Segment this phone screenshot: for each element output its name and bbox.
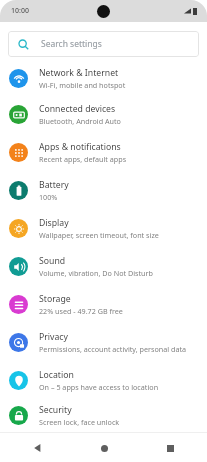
staticText: On – 5 apps have access to location — [39, 382, 159, 392]
button[interactable]: Recent apps — [157, 435, 183, 461]
staticText: Network & Internet — [39, 67, 119, 79]
staticText: Connected devices — [39, 103, 116, 115]
staticText: Battery — [39, 179, 69, 191]
staticText: Location — [39, 369, 74, 381]
button[interactable]: Search settings — [8, 31, 199, 57]
staticText: Privacy — [39, 331, 68, 343]
button[interactable]: Location — [0, 361, 207, 399]
staticText: Apps & notifications — [39, 141, 121, 153]
button[interactable]: Home — [91, 435, 117, 461]
button[interactable]: Network & Internet — [0, 57, 207, 95]
staticText: 100% — [39, 192, 58, 202]
staticText: Storage — [39, 293, 71, 305]
button[interactable]: Back — [24, 435, 50, 461]
staticText: Bluetooth, Android Auto — [39, 116, 121, 126]
staticText: 10:00 — [11, 6, 29, 16]
staticText: Volume, vibration, Do Not Disturb — [39, 268, 153, 278]
staticText: Display — [39, 217, 69, 229]
staticText: Recent apps, default apps — [39, 154, 127, 164]
staticText: Sound — [39, 255, 66, 267]
button[interactable]: Battery — [0, 171, 207, 209]
button[interactable]: Display — [0, 209, 207, 247]
staticText: Wallpaper, screen timeout, font size — [39, 230, 159, 240]
staticText: Permissions, account activity, personal … — [39, 344, 187, 354]
button[interactable]: Security — [0, 399, 207, 432]
staticText: Wi-Fi, mobile and hotspot — [39, 80, 126, 90]
button[interactable]: Apps & notifications — [0, 133, 207, 171]
staticText: 22% used - 49.72 GB free — [39, 306, 123, 316]
button[interactable]: Privacy — [0, 323, 207, 361]
button[interactable]: Sound — [0, 247, 207, 285]
staticText: Security — [39, 404, 72, 416]
button[interactable]: Storage — [0, 285, 207, 323]
button[interactable]: Connected devices — [0, 95, 207, 133]
staticText: Search settings — [41, 38, 102, 50]
staticText: Screen lock, face unlock — [39, 417, 120, 427]
